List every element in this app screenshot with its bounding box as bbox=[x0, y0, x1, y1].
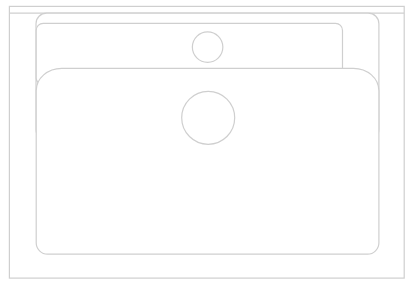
button[interactable]: Layered cards wireframe bbox=[0, 0, 414, 285]
